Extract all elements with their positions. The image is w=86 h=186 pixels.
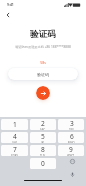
staticText: ABC — [40, 128, 46, 130]
staticText: 验证码已发送至手机 +86 188****8888 — [0, 45, 86, 49]
button[interactable]: 9 — [58, 145, 84, 156]
button[interactable]: 7 — [1, 145, 28, 156]
staticText: 9 — [69, 145, 73, 154]
staticText: DEF — [69, 128, 74, 130]
button[interactable]: 1 — [1, 119, 28, 130]
button[interactable]: Emoji — [67, 156, 77, 166]
staticText: JKL — [41, 141, 45, 143]
staticText: WXYZ — [67, 154, 75, 156]
button[interactable]: 4 — [1, 132, 28, 143]
staticText: 3 — [70, 119, 74, 128]
staticText: 4 — [13, 132, 17, 141]
staticText: 验证码 — [0, 29, 86, 40]
button[interactable]: Voice input — [67, 169, 77, 179]
staticText: MNO — [68, 141, 75, 143]
staticText: 6 — [70, 132, 74, 141]
button[interactable]: 2 — [30, 119, 56, 130]
staticText: 9:41 — [7, 2, 14, 7]
staticText: 0 — [41, 159, 45, 168]
staticText: 2 — [41, 119, 45, 128]
staticText: 5 — [41, 132, 45, 141]
staticText: 8 — [41, 145, 45, 154]
button[interactable]: 验证码 — [8, 68, 78, 80]
button[interactable]: Submit — [36, 86, 50, 100]
staticText: PQRS — [11, 154, 18, 156]
staticText: 1 — [13, 120, 17, 129]
button[interactable]: Back — [2, 9, 13, 20]
staticText: 58s — [0, 60, 86, 65]
button[interactable]: 3 — [58, 119, 84, 130]
staticText: 7 — [13, 145, 17, 154]
staticText: 验证码 — [37, 72, 49, 77]
button[interactable]: 0 — [30, 158, 56, 169]
staticText: GHI — [12, 141, 17, 143]
button[interactable]: 8 — [30, 145, 56, 156]
button[interactable]: 6 — [58, 132, 84, 143]
button[interactable]: 5 — [30, 132, 56, 143]
staticText: TUV — [40, 154, 46, 156]
